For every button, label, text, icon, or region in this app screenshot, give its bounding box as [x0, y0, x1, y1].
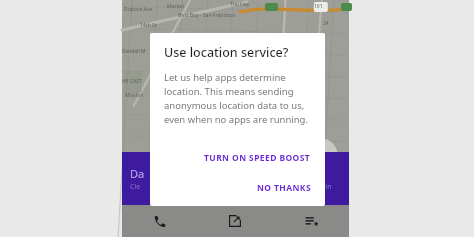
staticText: Market	[167, 3, 185, 10]
staticText: Use location service?	[164, 44, 289, 61]
staticText: Mission	[125, 92, 144, 99]
staticText: 24	[323, 20, 329, 27]
button[interactable]: Add to list	[273, 205, 349, 237]
staticText: min	[319, 182, 332, 192]
button[interactable]: Open in new	[197, 205, 273, 237]
button[interactable]: NO THANKS	[251, 178, 317, 198]
staticText: 14th St	[140, 22, 157, 29]
staticText: NO THANKS	[257, 182, 311, 194]
button[interactable]: Call	[122, 205, 197, 237]
staticText: 101	[314, 3, 323, 10]
staticText: Da	[130, 166, 145, 181]
button[interactable]: TURN ON SPEED BOOST	[198, 148, 317, 168]
staticText: Let us help apps determine location. Thi…	[164, 71, 313, 126]
staticText: HE CAST	[122, 78, 142, 85]
staticText: Trai Fwy	[230, 1, 250, 8]
staticText: Duboce Ave	[124, 6, 153, 13]
staticText: Randall M	[122, 48, 146, 55]
staticText: Cle	[130, 182, 141, 192]
staticText: Best Buy · San Francisco	[178, 12, 236, 19]
staticText: TURN ON SPEED BOOST	[204, 152, 311, 164]
